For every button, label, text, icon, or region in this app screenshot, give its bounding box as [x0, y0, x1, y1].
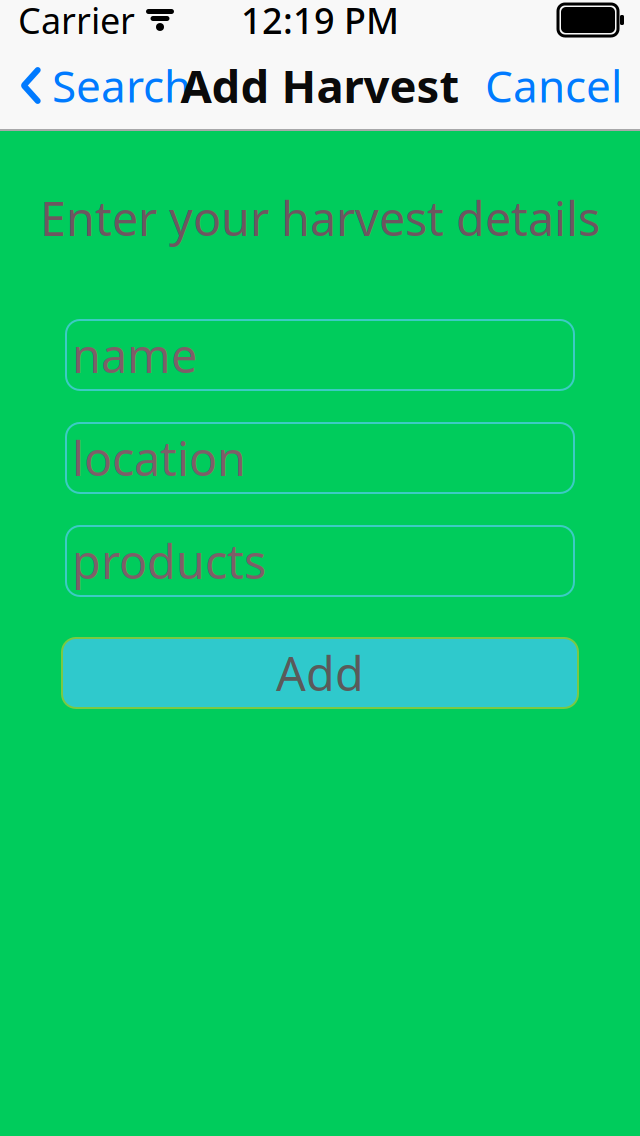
button[interactable]: location — [66, 423, 574, 493]
staticText: Add Harvest — [180, 55, 459, 116]
staticText: location — [72, 427, 246, 489]
button[interactable]: Add — [62, 638, 578, 708]
staticText: Add — [276, 642, 364, 704]
staticText: Search — [52, 56, 191, 115]
button[interactable]: name — [66, 320, 574, 390]
staticText: Enter your harvest details — [40, 187, 600, 249]
staticText: 12:19 PM — [241, 0, 399, 44]
staticText: name — [72, 324, 197, 386]
staticText: products — [72, 530, 266, 592]
button[interactable]: Cancel — [485, 48, 640, 123]
staticText: Carrier — [18, 0, 135, 44]
staticText: Cancel — [485, 56, 622, 115]
button[interactable]: Search — [0, 48, 191, 123]
button[interactable]: products — [66, 526, 574, 596]
